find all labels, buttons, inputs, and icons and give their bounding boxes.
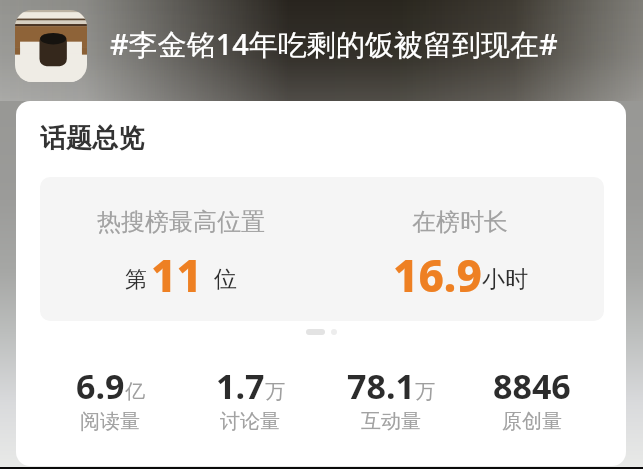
staticText: 讨论量 xyxy=(220,409,280,434)
button[interactable]: #李金铭14年吃剩的饭被留到现在# xyxy=(0,0,643,101)
button[interactable]: 78.1 xyxy=(320,363,461,434)
staticText: 万 xyxy=(415,379,435,404)
button[interactable]: 热搜榜最高位置 xyxy=(40,177,604,321)
staticText: 话题总览 xyxy=(40,122,144,155)
staticText: #李金铭14年吃剩的饭被留到现在# xyxy=(110,24,558,64)
staticText: 在榜时长 xyxy=(412,207,508,237)
button[interactable]: 8846 xyxy=(461,363,602,434)
staticText: 亿 xyxy=(125,379,145,404)
button[interactable]: 6.9 xyxy=(40,363,180,434)
staticText: 小时 xyxy=(482,265,528,294)
staticText: 6.9 xyxy=(76,363,125,409)
staticText: 热搜榜最高位置 xyxy=(97,207,265,237)
staticText: 位 xyxy=(214,265,237,294)
staticText: 8846 xyxy=(493,363,571,409)
staticText: 11 xyxy=(151,245,202,305)
staticText: 阅读量 xyxy=(80,409,140,434)
staticText: 第 xyxy=(125,266,147,294)
staticText: 1.7 xyxy=(216,363,265,409)
staticText: 原创量 xyxy=(502,409,562,434)
staticText: 互动量 xyxy=(361,409,421,434)
staticText: 78.1 xyxy=(347,363,415,409)
button[interactable]: 1.7 xyxy=(180,363,320,434)
staticText: 16.9 xyxy=(393,245,482,305)
staticText: 万 xyxy=(265,379,285,404)
